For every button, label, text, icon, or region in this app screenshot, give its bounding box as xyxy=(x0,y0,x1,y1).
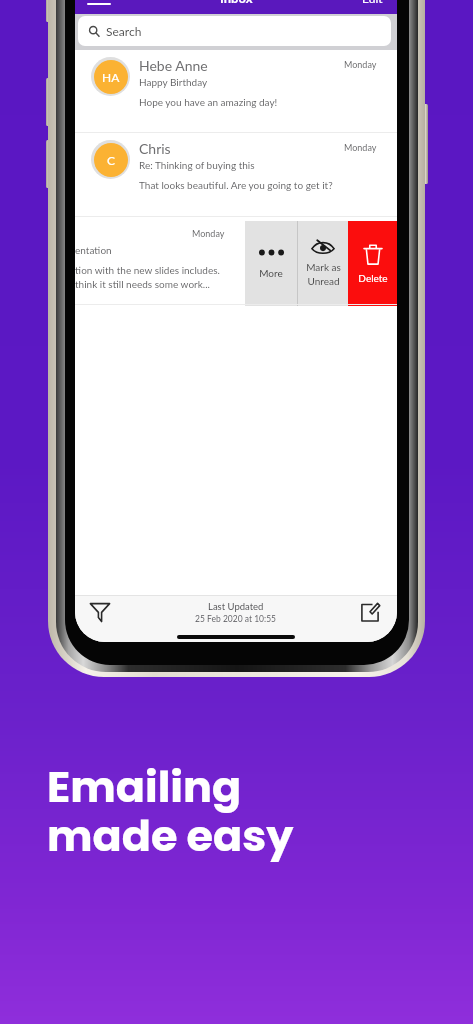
button[interactable]: Edit xyxy=(362,0,383,5)
staticText: entation xyxy=(75,244,112,256)
staticText: Monday xyxy=(192,228,225,239)
staticText: Search xyxy=(106,24,142,38)
staticText: Inbox xyxy=(220,0,253,6)
button[interactable]: Compose xyxy=(359,601,381,623)
staticText: C xyxy=(107,153,116,167)
staticText: Emailing made easy xyxy=(47,757,294,866)
button[interactable]: HA xyxy=(75,50,397,132)
staticText: 25 Feb 2020 at 10:55 xyxy=(195,614,277,624)
button[interactable]: C xyxy=(75,133,397,216)
staticText: That looks beautiful. Are you going to g… xyxy=(139,179,333,191)
staticText: Monday xyxy=(344,142,377,153)
button[interactable]: entation xyxy=(75,217,397,304)
button[interactable]: Menu xyxy=(88,0,110,6)
button[interactable]: More xyxy=(245,221,297,306)
staticText: Mark as Unread xyxy=(306,261,341,287)
button[interactable]: Delete xyxy=(348,221,397,306)
staticText: Hope you have an amazing day! xyxy=(139,96,278,108)
staticText: tion with the new slides includes. xyxy=(75,264,220,276)
staticText: HA xyxy=(102,70,120,84)
staticText: Chris xyxy=(139,140,171,157)
staticText: Happy Birthday xyxy=(139,76,208,88)
staticText: Delete xyxy=(358,272,388,284)
button[interactable]: Filter xyxy=(88,600,112,624)
staticText: Hebe Anne xyxy=(139,57,208,74)
staticText: think it still needs some work... xyxy=(75,278,210,290)
staticText: More xyxy=(259,267,283,279)
button[interactable]: Mark as Unread xyxy=(298,221,348,306)
staticText: Re: Thinking of buying this xyxy=(139,159,255,171)
button[interactable]: Search xyxy=(78,16,391,46)
staticText: Last Updated xyxy=(208,601,264,612)
staticText: Monday xyxy=(344,59,377,70)
